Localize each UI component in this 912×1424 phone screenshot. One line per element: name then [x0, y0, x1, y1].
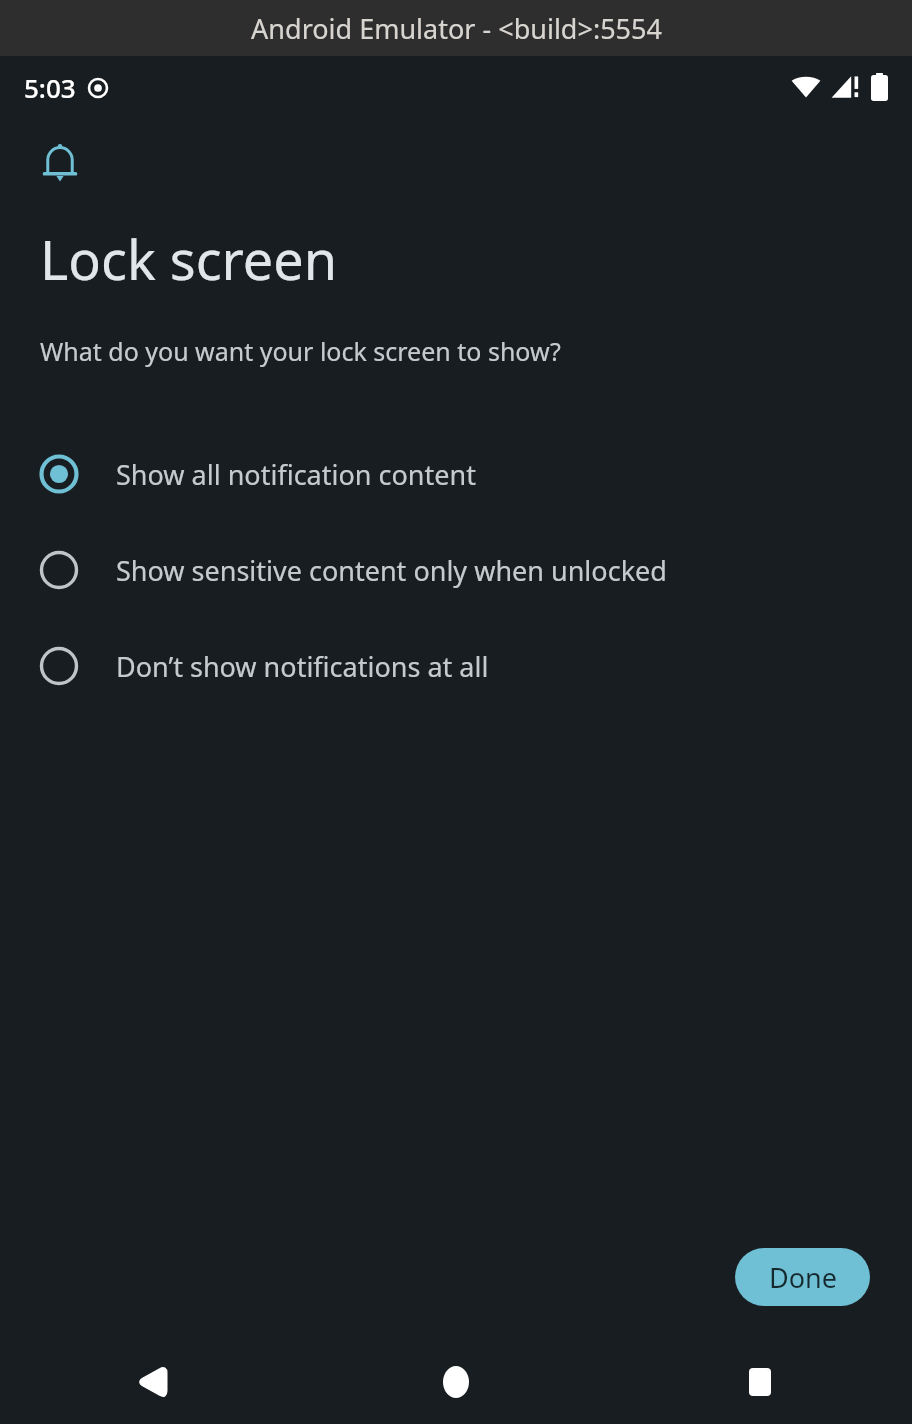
staticText: Don’t show notifications at all — [116, 648, 489, 685]
button[interactable]: Show sensitive content only when unlocke… — [0, 522, 912, 618]
button[interactable]: Show all notification content — [0, 426, 912, 522]
button[interactable]: Recent apps — [608, 1340, 912, 1424]
staticText: Done — [769, 1259, 837, 1296]
staticText: What do you want your lock screen to sho… — [40, 334, 561, 368]
staticText: Lock screen — [40, 222, 338, 296]
staticText: 5:03 — [24, 70, 76, 105]
button[interactable]: Done — [735, 1248, 870, 1306]
staticText: Show sensitive content only when unlocke… — [116, 552, 667, 589]
button[interactable]: Home — [304, 1340, 608, 1424]
staticText: Show all notification content — [116, 456, 476, 493]
button[interactable]: Don’t show notifications at all — [0, 618, 912, 714]
button[interactable]: Back — [0, 1340, 304, 1424]
staticText: Android Emulator - <build>:5554 — [251, 10, 662, 47]
